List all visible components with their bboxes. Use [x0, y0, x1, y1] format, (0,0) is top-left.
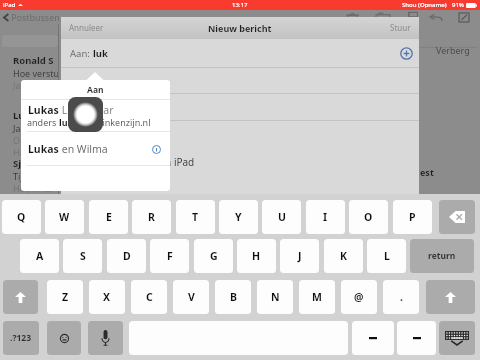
button[interactable]: Backspace: [439, 200, 475, 234]
button[interactable]: Shift: [3, 280, 38, 314]
button[interactable]: Hide keyboard: [439, 321, 475, 355]
staticText: en Wilma: [59, 142, 108, 156]
staticText: Q: [17, 210, 26, 224]
staticText: luk: [59, 116, 74, 128]
button[interactable]: .: [383, 280, 419, 314]
staticText: Lukas: [28, 142, 59, 156]
staticText: Stuur: [390, 22, 411, 33]
button[interactable]: Dash: [397, 321, 436, 355]
button[interactable]: Stuur: [387, 19, 414, 36]
button[interactable]: F: [150, 239, 189, 273]
staticText: luk: [93, 47, 108, 60]
button[interactable]: Annuleer: [66, 19, 107, 36]
button[interactable]: C: [131, 280, 167, 314]
button[interactable]: U: [262, 200, 301, 234]
staticText: Lukas: [13, 109, 41, 122]
staticText: C: [146, 290, 153, 304]
button[interactable]: V: [173, 280, 209, 314]
button[interactable]: Postbussen: [0, 11, 63, 23]
staticText: anders: [27, 116, 59, 128]
staticText: Aan:: [70, 47, 93, 60]
staticText: O: [364, 210, 373, 224]
button[interactable]: Aan:: [61, 39, 419, 67]
staticText: Y: [235, 210, 242, 224]
staticText: Hartelijk: [13, 146, 49, 158]
staticText: I: [323, 210, 328, 224]
button[interactable]: .?123: [3, 321, 39, 355]
button[interactable]: H: [237, 239, 276, 273]
staticText: B: [230, 290, 237, 304]
button[interactable]: P: [393, 200, 432, 234]
button[interactable]: N: [257, 280, 293, 314]
staticText: Lukas: [28, 103, 59, 117]
staticText: Hoi, ik ka: [13, 182, 52, 194]
button[interactable]: L: [367, 239, 406, 273]
button[interactable]: Dictate: [88, 321, 123, 355]
button[interactable]: Y: [219, 200, 258, 234]
staticText: N: [271, 290, 280, 304]
staticText: Z: [62, 290, 69, 304]
staticText: L: [384, 249, 390, 263]
button[interactable]: Dash: [352, 321, 394, 355]
button[interactable]: T: [176, 200, 215, 234]
button[interactable]: E: [89, 200, 128, 234]
staticText: Ja, dat is: [13, 79, 49, 91]
button[interactable]: W: [45, 200, 84, 234]
button[interactable]: return: [410, 239, 474, 273]
staticText: Lukkenaar: [59, 103, 114, 117]
button[interactable]: D: [107, 239, 146, 273]
button[interactable]: Lukas: [21, 132, 170, 165]
button[interactable]: Add recipient: [399, 46, 414, 61]
staticText: M: [312, 290, 322, 304]
button[interactable]: Compose: [455, 12, 473, 22]
staticText: F: [167, 249, 173, 263]
staticText: J: [298, 249, 302, 263]
button[interactable]: I: [306, 200, 345, 234]
staticText: Shou (Opname): [402, 1, 447, 9]
button[interactable]: [61, 68, 419, 93]
button[interactable]: O: [349, 200, 388, 234]
button[interactable]: Q: [2, 200, 41, 234]
staticText: D: [123, 249, 131, 263]
button[interactable]: More info: [150, 143, 162, 155]
staticText: E: [106, 210, 112, 224]
button[interactable]: Verberg: [432, 42, 474, 58]
staticText: Sjoerd: [13, 157, 43, 170]
staticText: R: [148, 210, 155, 224]
button[interactable]: Emoji: [47, 321, 81, 355]
button[interactable]: K: [324, 239, 363, 273]
button[interactable]: Shift: [426, 280, 475, 314]
staticText: X: [103, 290, 111, 304]
button[interactable]: @: [341, 280, 377, 314]
button[interactable]: B: [215, 280, 251, 314]
button[interactable]: [61, 94, 419, 120]
button[interactable]: Sjoerd: [13, 157, 59, 194]
button[interactable]: A: [20, 239, 59, 273]
staticText: .?123: [10, 332, 32, 344]
button[interactable]: J: [280, 239, 319, 273]
button[interactable]: M: [299, 280, 335, 314]
button[interactable]: Lukas: [21, 99, 170, 131]
button[interactable]: Z: [47, 280, 83, 314]
staticText: Postbussen: [11, 11, 60, 23]
staticText: Ja, dat kl: [13, 122, 49, 134]
button[interactable]: Ronald S: [13, 54, 59, 91]
staticText: T: [192, 210, 199, 224]
button[interactable]: G: [194, 239, 233, 273]
button[interactable]: X: [89, 280, 125, 314]
button[interactable]: Lukas: [13, 109, 59, 158]
staticText: Of wil je: [13, 134, 47, 146]
button[interactable]: Reply: [428, 13, 444, 22]
staticText: K: [340, 249, 347, 263]
staticText: Verzonden vanaf mijn iPad: [69, 155, 195, 169]
staticText: 13:17: [232, 1, 248, 9]
staticText: H: [252, 249, 261, 263]
button[interactable]: R: [132, 200, 171, 234]
staticText: P: [409, 210, 416, 224]
button[interactable]: S: [63, 239, 102, 273]
staticText: .: [400, 290, 403, 304]
staticText: W: [59, 210, 70, 224]
staticText: return: [428, 250, 456, 262]
